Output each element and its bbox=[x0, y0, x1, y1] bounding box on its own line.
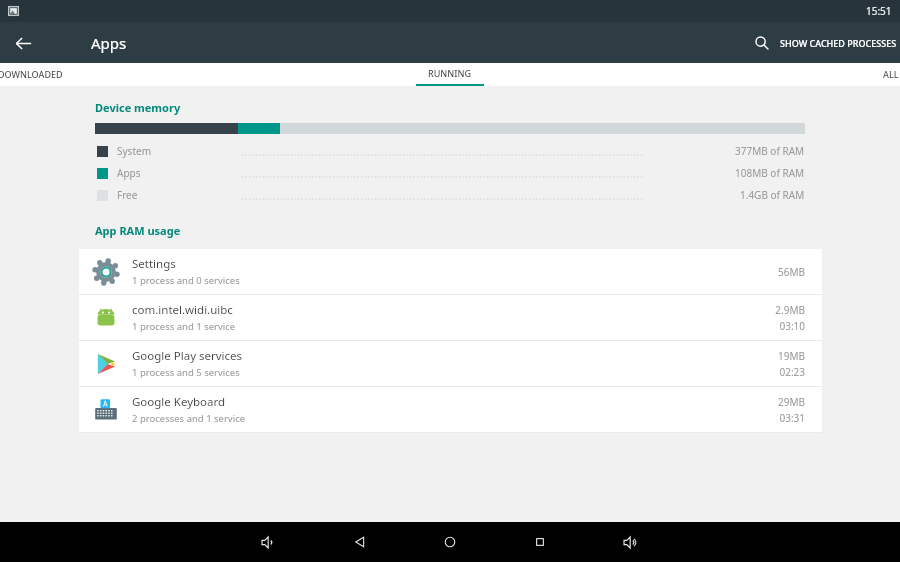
staticText: System bbox=[117, 144, 151, 158]
staticText: Apps bbox=[91, 33, 127, 53]
staticText: Apps bbox=[117, 166, 141, 180]
staticText: 02:23 bbox=[779, 365, 805, 379]
button[interactable]: Settings bbox=[79, 249, 822, 294]
staticText: Free bbox=[117, 188, 138, 202]
staticText: Settings bbox=[132, 256, 176, 272]
button[interactable]: Google Play services bbox=[79, 341, 822, 386]
button[interactable]: Home bbox=[430, 522, 470, 562]
staticText: 1 process and 1 service bbox=[132, 320, 236, 333]
staticText: com.intel.widi.uibc bbox=[132, 302, 233, 318]
button[interactable]: Free bbox=[0, 184, 900, 206]
staticText: 29MB bbox=[777, 395, 805, 409]
button[interactable]: Volume up bbox=[610, 522, 650, 562]
staticText: Google Play services bbox=[132, 348, 243, 364]
button[interactable]: Back bbox=[9, 29, 37, 57]
button[interactable]: com.intel.widi.uibc bbox=[79, 295, 822, 340]
staticText: 2 processes and 1 service bbox=[132, 412, 246, 425]
button[interactable]: DOWNLOADED bbox=[0, 68, 63, 80]
staticText: 03:31 bbox=[779, 411, 805, 425]
button[interactable]: ALL bbox=[883, 68, 899, 80]
button[interactable]: RUNNING bbox=[416, 63, 484, 86]
staticText: RUNNING bbox=[428, 67, 472, 79]
button[interactable]: Back bbox=[340, 522, 380, 562]
staticText: 03:10 bbox=[779, 319, 805, 333]
button[interactable]: Recent apps bbox=[520, 522, 560, 562]
staticText: Device memory bbox=[95, 100, 181, 115]
staticText: 1 process and 5 services bbox=[132, 366, 240, 379]
staticText: SHOW CACHED PROCESSES bbox=[780, 37, 897, 49]
button[interactable]: Volume down bbox=[248, 522, 288, 562]
button[interactable]: SHOW CACHED PROCESSES bbox=[777, 30, 900, 56]
staticText: 56MB bbox=[777, 265, 805, 279]
staticText: 2.9MB bbox=[775, 303, 805, 317]
button[interactable]: System bbox=[0, 140, 900, 162]
staticText: 108MB of RAM bbox=[735, 166, 805, 180]
staticText: 19MB bbox=[777, 349, 805, 363]
staticText: 1.4GB of RAM bbox=[740, 188, 805, 202]
staticText: App RAM usage bbox=[95, 223, 181, 238]
staticText: 1 process and 0 services bbox=[132, 274, 240, 287]
button[interactable]: Apps bbox=[0, 162, 900, 184]
staticText: 377MB of RAM bbox=[735, 144, 805, 158]
button[interactable]: Google Keyboard bbox=[79, 387, 822, 432]
staticText: Google Keyboard bbox=[132, 394, 226, 410]
staticText: 15:51 bbox=[866, 4, 892, 18]
button[interactable]: Search bbox=[747, 28, 777, 58]
